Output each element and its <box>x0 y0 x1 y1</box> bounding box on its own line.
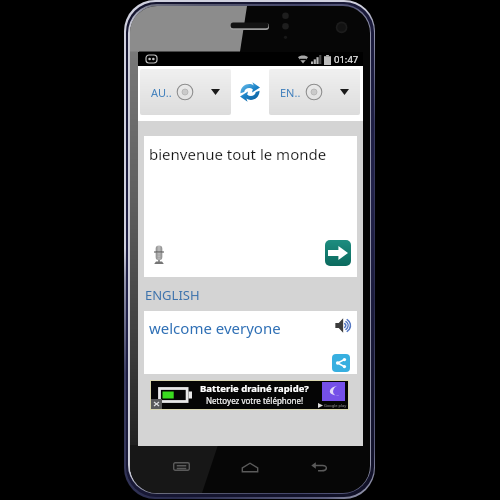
button[interactable]: Swap languages <box>240 82 260 102</box>
button[interactable]: Home <box>242 463 258 472</box>
button[interactable]: EN.. <box>269 69 360 115</box>
button[interactable]: Speak <box>335 317 352 334</box>
button[interactable]: bienvenue tout le monde <box>144 136 357 277</box>
staticText: welcome everyone <box>149 318 281 338</box>
button[interactable]: Share <box>332 354 350 372</box>
staticText: AU.. <box>151 85 172 100</box>
button[interactable]: Recent apps <box>173 462 190 471</box>
button[interactable]: welcome everyone <box>144 311 357 374</box>
staticText: 01:47 <box>334 53 359 66</box>
staticText: bienvenue tout le monde <box>149 144 327 164</box>
button[interactable]: Close ad <box>151 399 162 409</box>
button[interactable]: Batterie drainé rapide? <box>151 381 348 409</box>
staticText: Nettoyez votre téléphone! <box>206 395 304 406</box>
staticText: Google play <box>324 403 347 408</box>
staticText: Batterie drainé rapide? <box>200 382 309 395</box>
button[interactable]: Translate <box>325 240 351 266</box>
button[interactable]: Voice input <box>154 245 164 264</box>
staticText: EN.. <box>280 85 301 100</box>
button[interactable]: Back <box>311 462 327 471</box>
staticText: ENGLISH <box>145 286 200 304</box>
button[interactable]: AU.. <box>140 69 231 115</box>
